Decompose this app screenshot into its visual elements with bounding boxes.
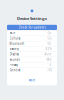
staticText: Check for updates: [18, 26, 45, 29]
button[interactable]: Battery: [7, 46, 57, 51]
button[interactable]: Check for updates: [7, 25, 57, 30]
button[interactable]: Cellular: [7, 36, 57, 41]
staticText: Bluetooth: [10, 42, 25, 45]
button[interactable]: Privacy: [7, 62, 57, 67]
staticText: 82%: [45, 47, 51, 51]
staticText: Auto: [44, 52, 51, 56]
staticText: Mid: [46, 58, 51, 61]
button[interactable]: More: [7, 79, 57, 82]
staticText: More: [28, 78, 35, 82]
button[interactable]: Bluetooth: [7, 41, 57, 46]
button[interactable]: General: [7, 68, 57, 73]
staticText: Wi-Fi: [10, 31, 16, 35]
staticText: 5G: [47, 37, 51, 40]
staticText: Battery: [10, 47, 19, 51]
staticText: On: [47, 31, 51, 35]
staticText: Sounds: [10, 58, 20, 61]
staticText: Display: [10, 52, 19, 56]
button[interactable]: Wi-Fi: [7, 31, 57, 36]
button[interactable]: Display: [7, 52, 57, 57]
staticText: 4: [49, 63, 51, 67]
staticText: On: [47, 42, 51, 45]
button[interactable]: Sounds: [7, 57, 57, 62]
staticText: Device Settings: [17, 16, 47, 21]
staticText: Privacy: [10, 63, 18, 67]
staticText: General: [10, 68, 21, 72]
staticText: Cellular: [10, 37, 21, 40]
staticText: iOS: [47, 68, 51, 72]
